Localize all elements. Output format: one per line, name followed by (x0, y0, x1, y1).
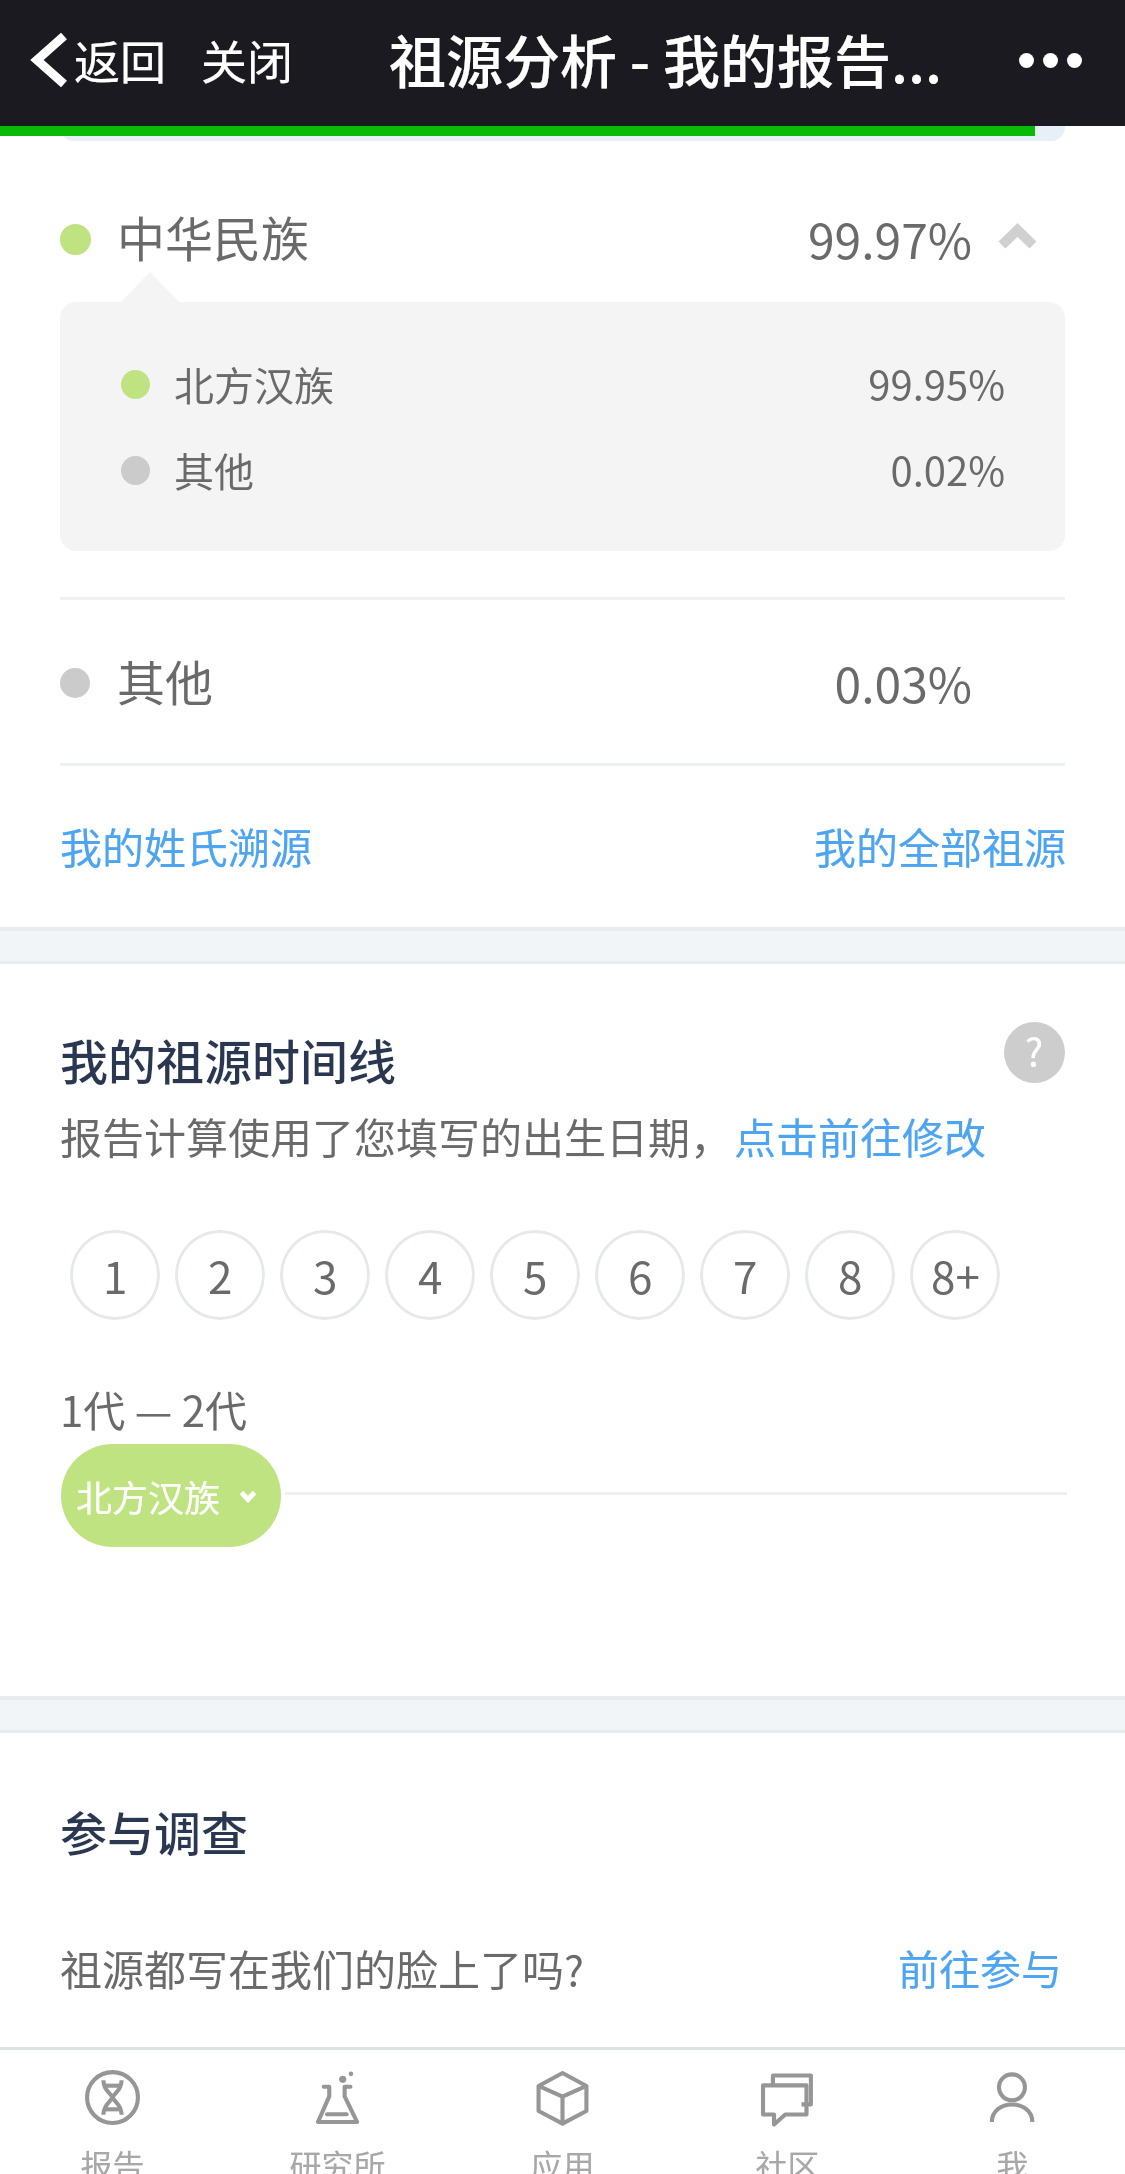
button[interactable]: 6 (595, 1230, 685, 1320)
staticText: 7 (733, 1243, 758, 1307)
staticText: 其他 (117, 645, 214, 715)
button[interactable]: 点击前往修改 (728, 1089, 993, 1182)
staticText: ? (1025, 1023, 1044, 1078)
button[interactable]: 8 (805, 1230, 895, 1320)
button[interactable]: 关闭 (201, 26, 293, 93)
staticText: 4 (418, 1243, 443, 1307)
staticText: 5 (523, 1243, 548, 1307)
staticText: 3 (313, 1243, 338, 1307)
button[interactable]: 报告 (0, 2050, 225, 2174)
button[interactable]: 应用 (450, 2050, 675, 2174)
staticText: 应用 (530, 2141, 595, 2174)
button[interactable]: 8+ (910, 1230, 1000, 1320)
staticText: 北方汉族 (174, 355, 334, 413)
button[interactable]: 社区 (675, 2050, 900, 2174)
button[interactable]: More options (1019, 53, 1082, 68)
staticText: 北方汉族 (76, 1470, 221, 1522)
button[interactable] (60, 426, 1065, 516)
staticText: 返回 (74, 26, 166, 93)
staticText: 其他 (174, 441, 254, 499)
button[interactable] (0, 630, 1125, 735)
button[interactable]: 3 (280, 1230, 370, 1320)
button[interactable] (60, 338, 1065, 428)
button[interactable]: 我的全部祖源 (806, 799, 1075, 892)
button[interactable]: 前往参与 (890, 1921, 1070, 2012)
staticText: 99.97% (807, 203, 972, 273)
staticText: 前往参与 (898, 1937, 1062, 1996)
staticText: 1代 — 2代 (60, 1378, 247, 1439)
button[interactable]: 4 (385, 1230, 475, 1320)
button[interactable]: 2 (175, 1230, 265, 1320)
staticText: 0.02% (890, 440, 1005, 498)
staticText: 我 (996, 2141, 1029, 2174)
button[interactable]: 5 (490, 1230, 580, 1320)
staticText: 8 (838, 1243, 863, 1307)
staticText: 社区 (755, 2141, 820, 2174)
button[interactable]: 1 (70, 1230, 160, 1320)
button[interactable] (0, 190, 1125, 290)
button[interactable]: 研究所 (225, 2050, 450, 2174)
staticText: 我的祖源时间线 (60, 1024, 397, 1094)
staticText: 研究所 (289, 2141, 386, 2174)
staticText: 8+ (931, 1243, 980, 1307)
staticText: 0.03% (834, 647, 972, 717)
staticText: 6 (628, 1243, 653, 1307)
button[interactable]: 7 (700, 1230, 790, 1320)
button[interactable]: 返回 (31, 30, 166, 97)
button[interactable]: 北方汉族 (61, 1444, 281, 1547)
staticText: 祖源分析 - 我的报告... (389, 17, 942, 100)
staticText: 1 (103, 1243, 128, 1307)
button[interactable]: Help (1004, 1022, 1065, 1083)
staticText: 我的全部祖源 (814, 815, 1067, 876)
staticText: 2 (208, 1243, 233, 1307)
staticText: 报告 (80, 2141, 145, 2174)
button[interactable]: 我 (900, 2050, 1125, 2174)
button[interactable]: 我的姓氏溯源 (52, 799, 321, 892)
staticText: 点击前往修改 (734, 1105, 987, 1166)
staticText: 99.95% (868, 354, 1005, 412)
staticText: 祖源都写在我们的脸上了吗? (60, 1937, 584, 1998)
staticText: 我的姓氏溯源 (60, 815, 313, 876)
staticText: 报告计算使用了您填写的出生日期， (60, 1105, 733, 1166)
staticText: 参与调查 (60, 1796, 248, 1864)
staticText: 中华民族 (117, 201, 310, 271)
